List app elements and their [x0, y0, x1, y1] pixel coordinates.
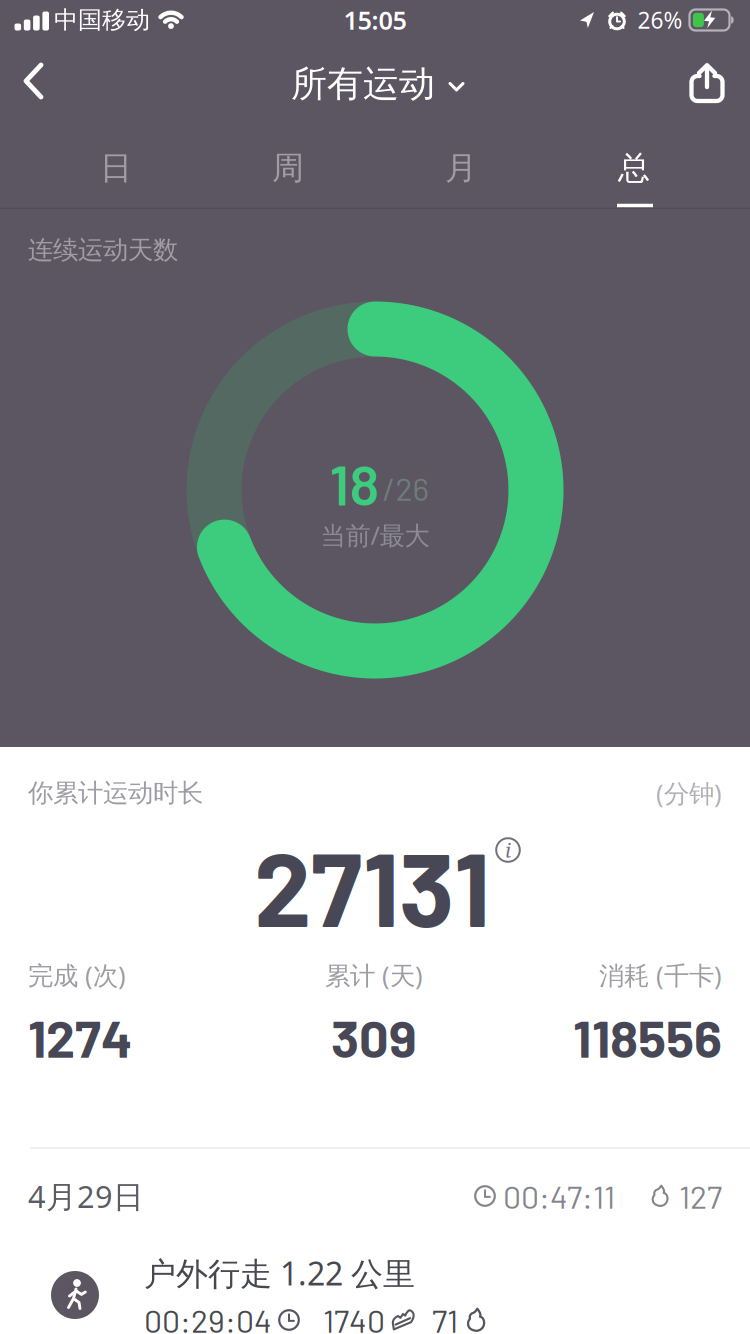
staticText: 15:05: [343, 3, 406, 37]
button[interactable]: Back: [11, 50, 57, 112]
staticText: 127: [679, 1177, 722, 1215]
button[interactable]: Share: [680, 55, 733, 111]
staticText: (分钟): [656, 776, 722, 810]
staticText: 1274: [28, 1006, 132, 1068]
staticText: i: [505, 836, 511, 864]
button[interactable]: 户外行走 1.22 公里: [0, 1237, 750, 1334]
staticText: 26%: [637, 5, 682, 35]
staticText: 你累计运动时长: [28, 777, 203, 808]
staticText: 309: [331, 1006, 417, 1068]
button[interactable]: 日: [31, 136, 201, 200]
staticText: 日: [100, 148, 132, 188]
button[interactable]: 所有运动: [291, 62, 465, 106]
staticText: 4月29日: [28, 1176, 144, 1216]
staticText: 户外行走 1.22 公里: [144, 1252, 415, 1294]
staticText: 1740: [323, 1301, 385, 1334]
staticText: 118556: [573, 1006, 722, 1068]
button[interactable]: 4月29日: [28, 1149, 722, 1243]
staticText: 27131: [254, 824, 490, 948]
staticText: 18: [329, 449, 379, 517]
staticText: 周: [272, 148, 304, 188]
staticText: 连续运动天数: [28, 234, 178, 265]
staticText: 总: [618, 148, 650, 188]
staticText: 月: [445, 148, 477, 188]
staticText: 00:47:11: [503, 1177, 615, 1215]
staticText: 71: [432, 1301, 458, 1334]
button[interactable]: 总: [549, 136, 719, 200]
button[interactable]: 周: [203, 136, 373, 200]
button[interactable]: 月: [376, 136, 546, 200]
staticText: 00:29:04: [144, 1301, 272, 1334]
staticText: 所有运动: [291, 62, 435, 106]
staticText: 完成 (次): [28, 958, 126, 992]
staticText: 消耗 (千卡): [599, 958, 722, 992]
staticText: 当前/最大: [320, 518, 429, 552]
button[interactable]: Info: [495, 837, 521, 863]
staticText: /26: [382, 469, 428, 507]
staticText: 中国移动: [54, 5, 150, 35]
staticText: 累计 (天): [325, 958, 423, 992]
